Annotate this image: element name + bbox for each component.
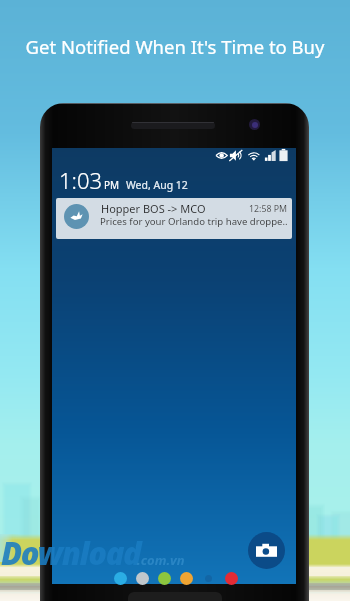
staticText: Hopper BOS -> MCO xyxy=(101,201,206,216)
staticText: PM xyxy=(104,178,120,192)
staticText: Download xyxy=(1,532,141,574)
staticText: Get Notified When It's Time to Buy xyxy=(0,34,350,59)
staticText: Wed, Aug 12 xyxy=(126,178,188,192)
staticText: Prices for your Orlando trip have droppe… xyxy=(100,215,288,228)
staticText: .com.vn xyxy=(137,551,185,569)
staticText: 1:03 xyxy=(59,165,103,195)
button[interactable]: Camera xyxy=(248,532,285,569)
button[interactable]: Hopper BOS -> MCO xyxy=(56,198,292,239)
staticText: 12:58 PM xyxy=(249,203,288,215)
